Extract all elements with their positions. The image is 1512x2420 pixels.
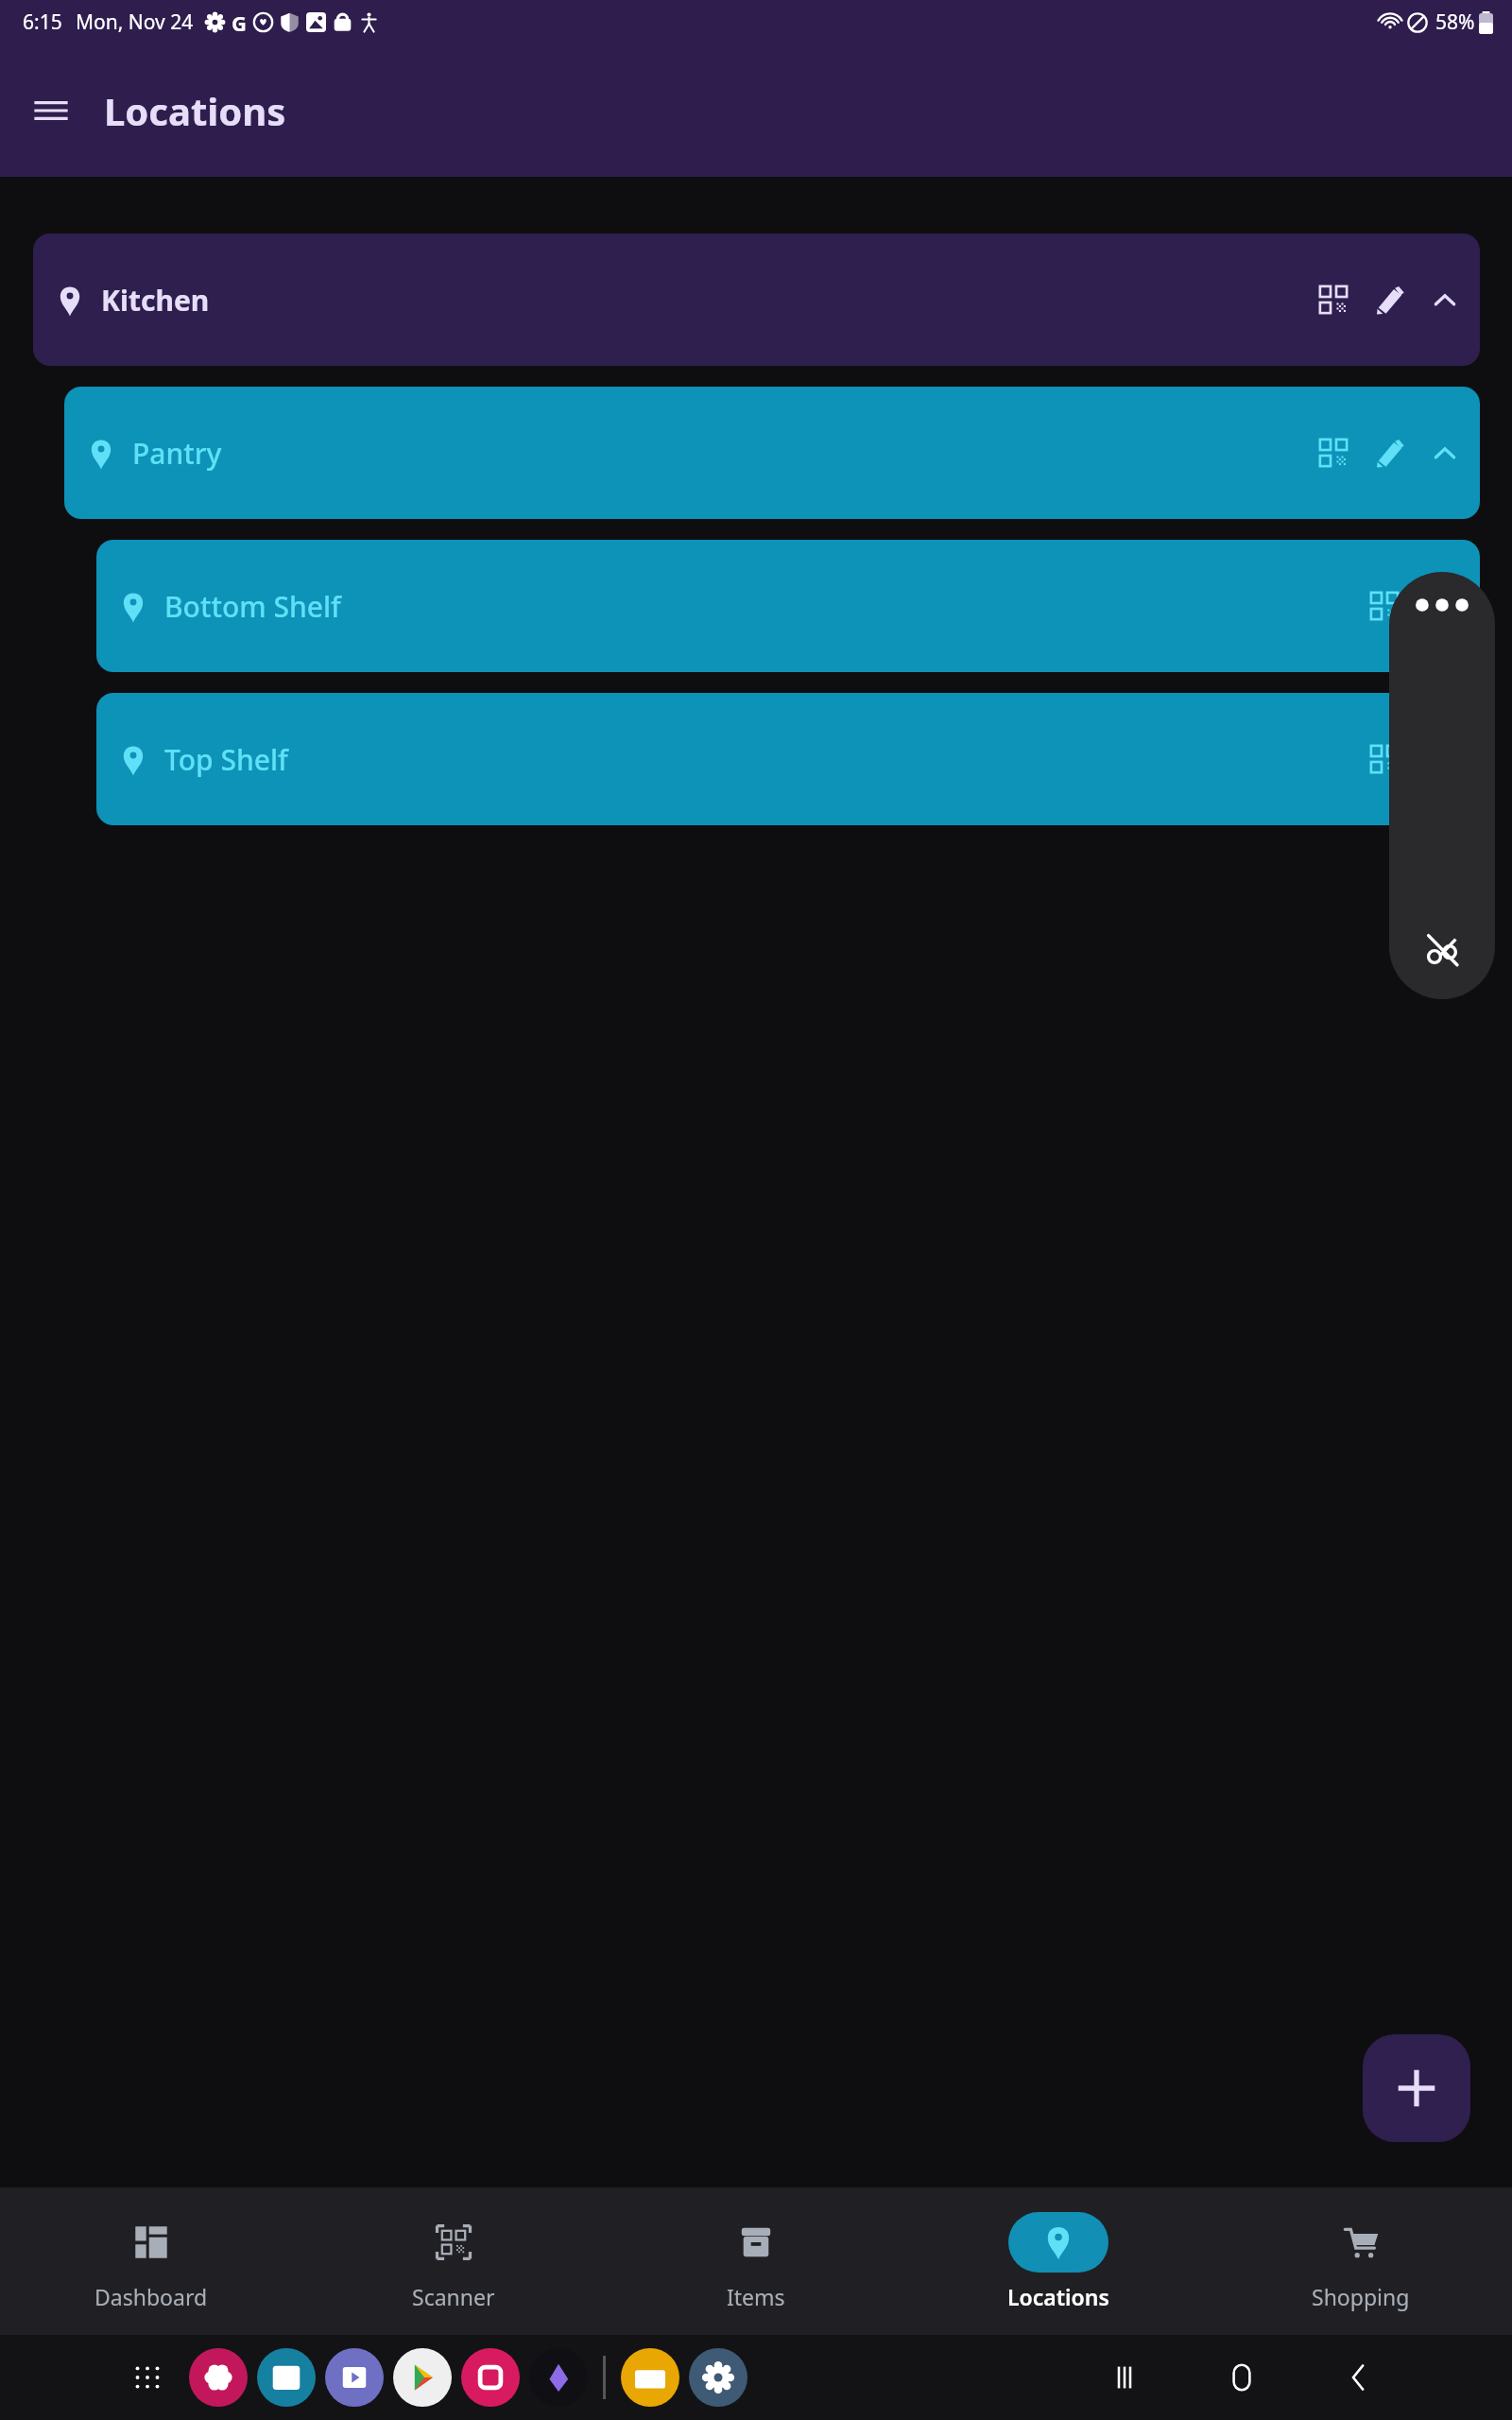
button[interactable]: Kitchen [33,233,1480,366]
button[interactable]: Show QR code for Kitchen [1308,274,1359,325]
button[interactable]: Items [605,2187,907,2335]
button[interactable]: Settings [689,2348,747,2407]
button[interactable]: App 4 [393,2348,452,2407]
button[interactable]: Shopping [1210,2187,1512,2335]
staticText: Top Shelf [164,740,288,779]
button[interactable]: Recents [1094,2347,1155,2408]
staticText: G [232,9,247,37]
staticText: Dashboard [94,2282,208,2311]
button[interactable]: Bottom Shelf [96,540,1480,672]
staticText: Mon, Nov 24 [76,9,194,36]
button[interactable]: Show QR code for Top Shelf [1359,734,1410,785]
button[interactable]: App 5 [461,2348,520,2407]
staticText: Locations [104,85,286,136]
button[interactable]: Open navigation menu [15,75,87,147]
button[interactable]: Collapse Pantry [1419,427,1470,478]
staticText: Locations [1007,2282,1109,2311]
button[interactable]: Floating panel [1389,572,1495,999]
button[interactable]: Home [1211,2347,1272,2408]
staticText: 58% [1435,9,1475,36]
staticText: Bottom Shelf [164,587,341,626]
button[interactable]: Files [621,2348,679,2407]
button[interactable]: Apps [123,2353,172,2402]
button[interactable]: Scanner [302,2187,605,2335]
button[interactable]: Show QR code for Bottom Shelf [1359,580,1410,631]
button[interactable]: Edit Kitchen [1365,274,1416,325]
button[interactable]: Add location [1363,2034,1470,2142]
staticText: Kitchen [101,281,210,320]
button[interactable]: App 3 [325,2348,384,2407]
button[interactable]: App 6 [529,2348,588,2407]
button[interactable]: Top Shelf [96,693,1480,825]
button[interactable]: Show QR code for Pantry [1308,427,1359,478]
button[interactable]: Dashboard [0,2187,302,2335]
staticText: Scanner [412,2282,495,2311]
button[interactable]: Pantry [64,387,1480,519]
staticText: Items [727,2282,785,2311]
button[interactable]: Edit Bottom Shelf [1416,580,1467,631]
button[interactable]: Locations [907,2187,1210,2335]
staticText: Pantry [132,434,222,473]
staticText: Shopping [1312,2282,1410,2311]
button[interactable]: App 2 [257,2348,316,2407]
button[interactable]: Mute [1420,927,1464,971]
button[interactable]: App 1 [189,2348,248,2407]
button[interactable]: Back [1329,2347,1389,2408]
staticText: 6:15 [23,9,62,36]
button[interactable]: Collapse Kitchen [1419,274,1470,325]
button[interactable]: Edit Pantry [1365,427,1416,478]
